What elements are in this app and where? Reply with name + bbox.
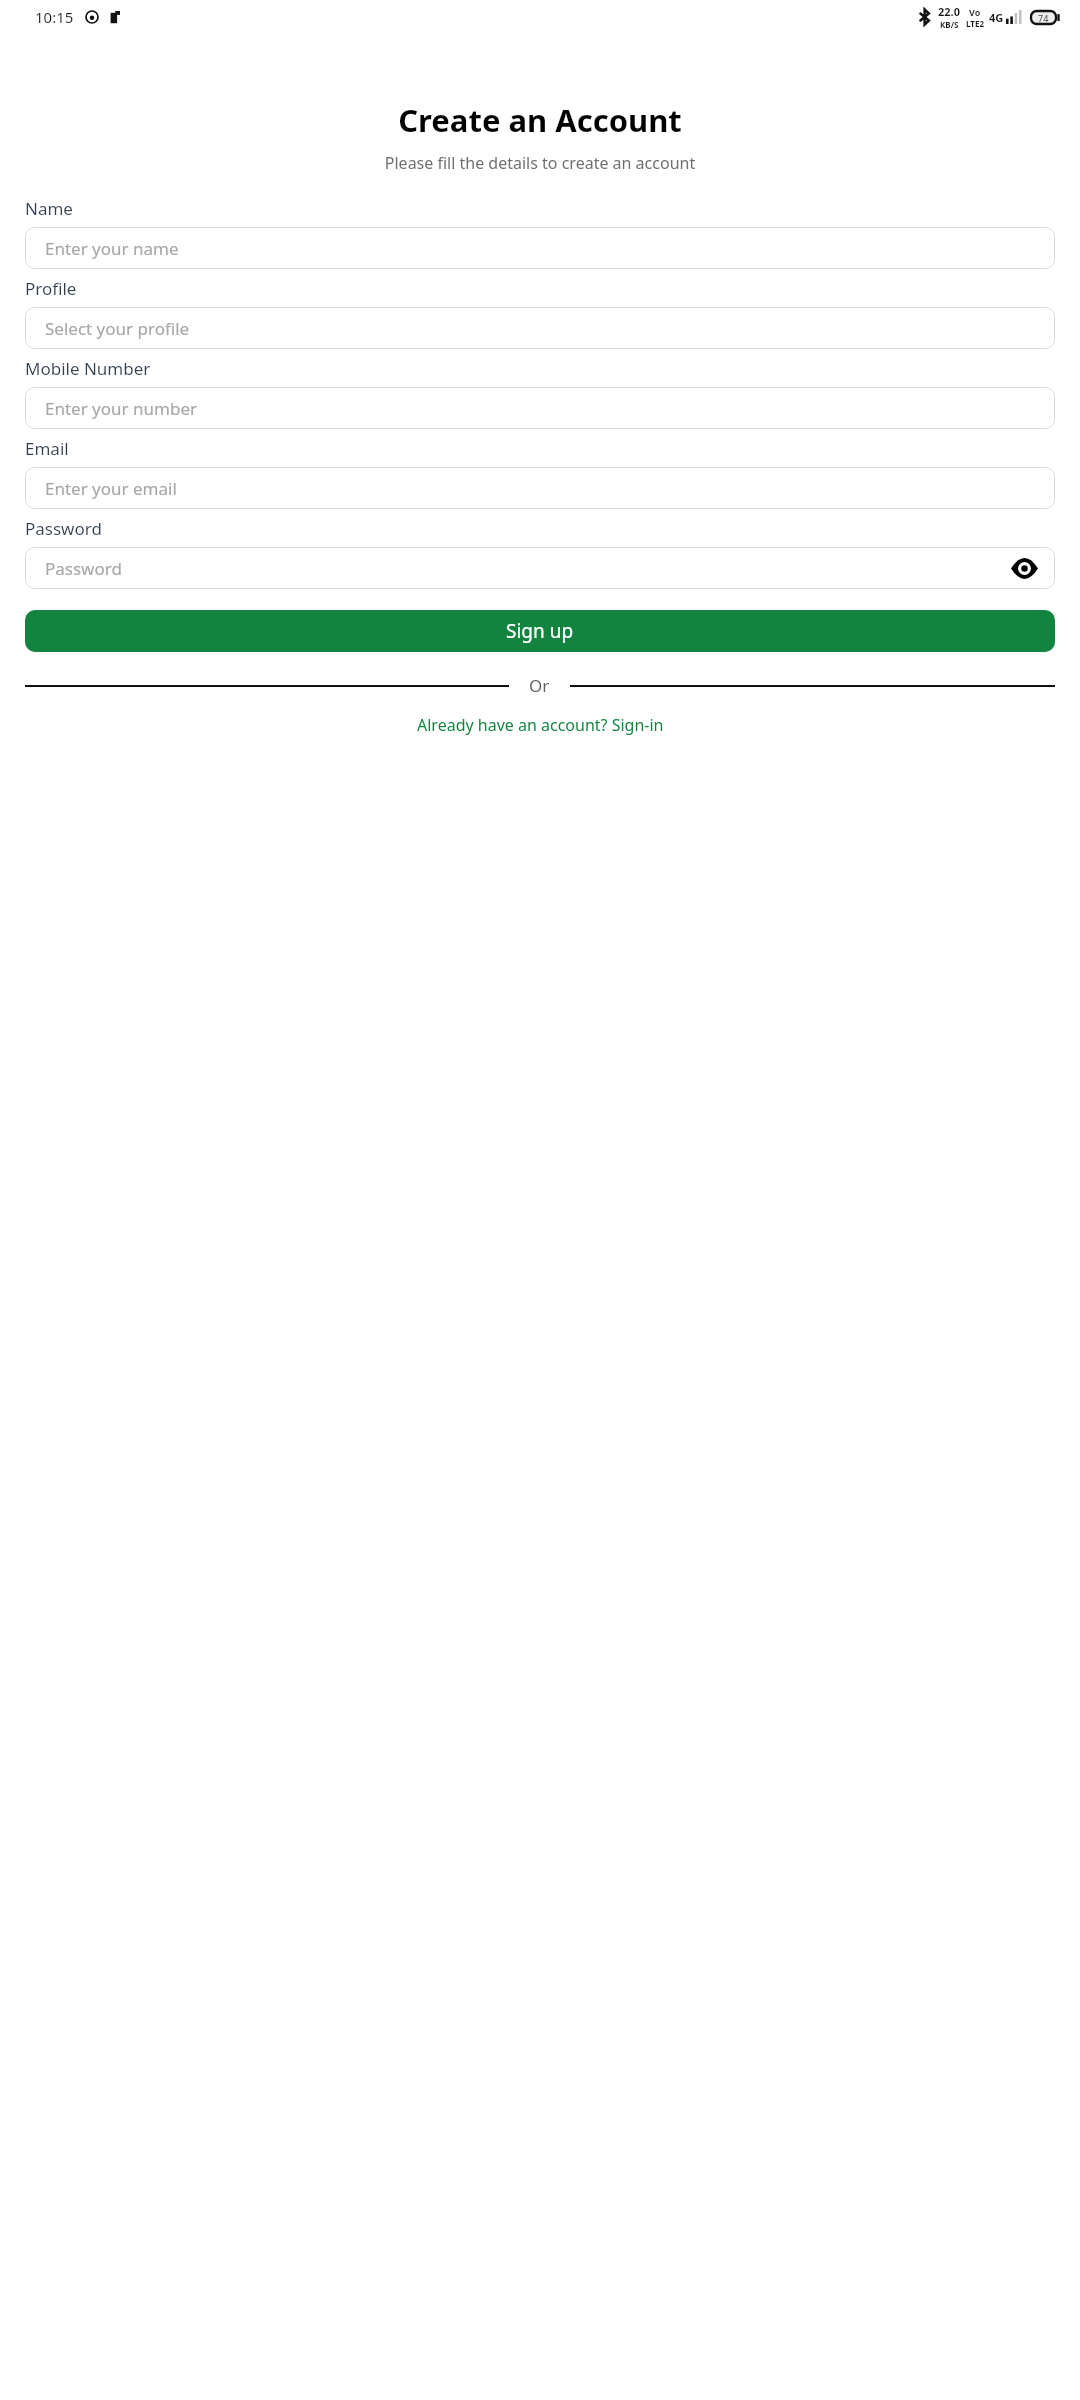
staticText: 10:15: [35, 7, 74, 27]
staticText: Email: [25, 437, 69, 460]
staticText: Select your profile: [45, 317, 190, 340]
staticText: Vo: [969, 6, 981, 18]
staticText: Password: [45, 557, 122, 580]
staticText: 22.0: [938, 4, 960, 19]
button[interactable]: Enter your email: [25, 467, 1055, 509]
staticText: Name: [25, 197, 73, 220]
staticText: Already have an account? Sign-in: [417, 714, 664, 736]
button[interactable]: Sign up: [25, 610, 1055, 652]
staticText: Sign up: [506, 618, 574, 644]
button[interactable]: Already have an account? Sign-in: [25, 714, 1055, 736]
staticText: Profile: [25, 277, 77, 300]
staticText: Enter your name: [45, 237, 179, 260]
button[interactable]: Enter your name: [25, 227, 1055, 269]
button[interactable]: Enter your number: [25, 387, 1055, 429]
button[interactable]: Show password: [1007, 551, 1041, 585]
staticText: Enter your email: [45, 477, 177, 500]
staticText: LTE2: [966, 18, 984, 29]
staticText: 74: [1038, 12, 1049, 24]
staticText: Mobile Number: [25, 357, 151, 380]
staticText: 4G: [989, 10, 1004, 25]
staticText: Enter your number: [45, 397, 197, 420]
button[interactable]: Password: [25, 547, 1055, 589]
staticText: KB/S: [940, 19, 959, 30]
staticText: Please fill the details to create an acc…: [0, 152, 1080, 174]
staticText: Create an Account: [0, 99, 1080, 141]
staticText: Or: [529, 674, 550, 697]
staticText: Password: [25, 517, 102, 540]
button[interactable]: Select your profile: [25, 307, 1055, 349]
